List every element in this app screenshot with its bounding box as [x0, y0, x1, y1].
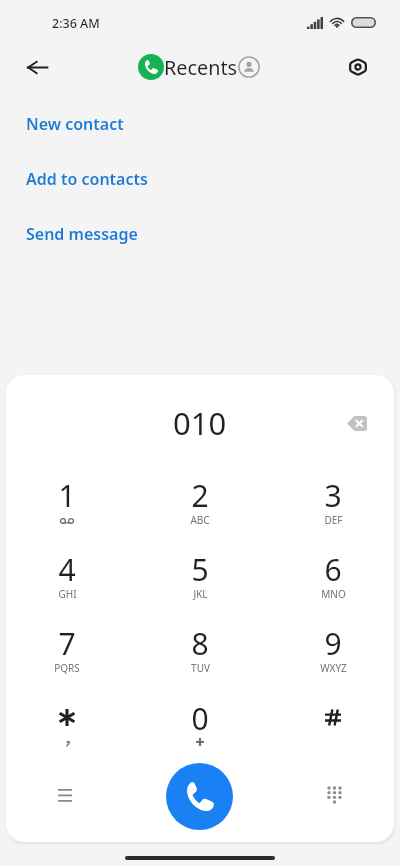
button[interactable]: 9: [283, 623, 383, 693]
button[interactable]: Menu: [45, 774, 85, 814]
button[interactable]: Settings: [338, 47, 378, 87]
button[interactable]: Add to contacts: [0, 158, 400, 200]
staticText: 2: [191, 475, 209, 516]
staticText: 9: [324, 623, 342, 664]
staticText: New contact: [26, 113, 124, 135]
staticText: 1: [58, 475, 76, 516]
button[interactable]: 4: [17, 549, 117, 619]
button[interactable]: Send message: [0, 213, 400, 255]
staticText: 7: [58, 623, 76, 664]
staticText: MNO: [321, 587, 346, 601]
button[interactable]: Dialpad: [314, 775, 354, 815]
button[interactable]: 3: [283, 475, 383, 545]
staticText: Add to contacts: [26, 168, 148, 190]
button[interactable]: New contact: [0, 103, 400, 145]
button[interactable]: Call: [166, 763, 233, 830]
staticText: WXYZ: [320, 661, 347, 675]
button[interactable]: 5: [150, 549, 250, 619]
button[interactable]: 7: [17, 623, 117, 693]
staticText: DEF: [324, 513, 343, 527]
staticText: 0: [191, 698, 209, 739]
staticText: 3: [324, 475, 342, 516]
button[interactable]: 0: [150, 698, 250, 768]
staticText: ABC: [190, 513, 210, 527]
button[interactable]: 6: [283, 549, 383, 619]
staticText: GHI: [58, 587, 77, 601]
button[interactable]: [283, 698, 383, 768]
staticText: 5: [191, 549, 209, 590]
staticText: Send message: [26, 223, 138, 245]
button[interactable]: 1: [17, 475, 117, 545]
button[interactable]: Backspace: [336, 403, 376, 443]
button[interactable]: Back: [17, 47, 57, 87]
staticText: PQRS: [54, 661, 80, 675]
staticText: Recents: [164, 54, 238, 81]
staticText: JKL: [193, 587, 208, 601]
button[interactable]: [17, 698, 117, 768]
staticText: 4: [58, 549, 76, 590]
button[interactable]: 8: [150, 623, 250, 693]
staticText: TUV: [191, 661, 210, 675]
staticText: 6: [324, 549, 342, 590]
staticText: 010: [173, 402, 227, 444]
staticText: 8: [191, 623, 209, 664]
button[interactable]: 2: [150, 475, 250, 545]
staticText: 2:36 AM: [52, 15, 100, 32]
